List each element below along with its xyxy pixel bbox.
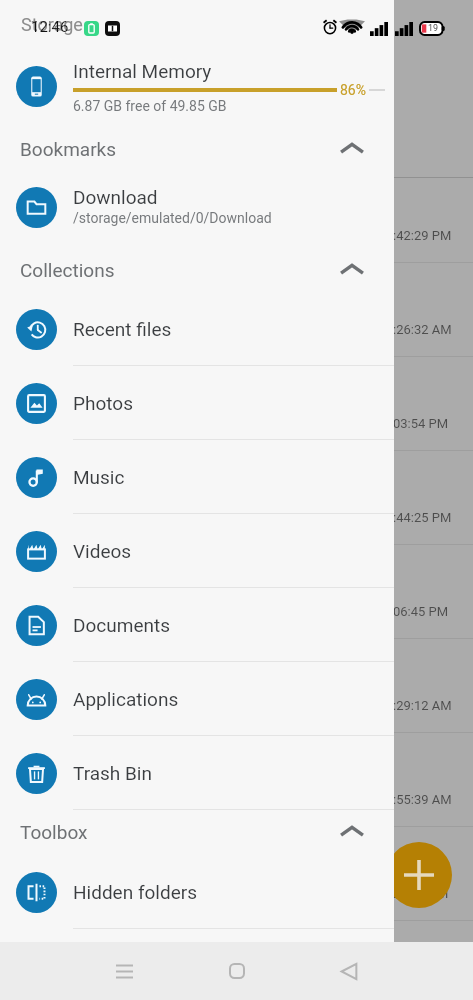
button[interactable]: Toolbox <box>0 814 394 849</box>
staticText: Documents <box>73 614 170 636</box>
staticText: Videos <box>73 540 132 562</box>
button[interactable]: Home <box>213 947 261 995</box>
staticText: :55:39 AM <box>393 792 452 807</box>
staticText: Hidden folders <box>73 881 197 903</box>
staticText: Recent files <box>73 318 172 340</box>
button[interactable]: Documents <box>0 588 394 662</box>
staticText: /storage/emulated/0/Download <box>73 210 272 226</box>
button[interactable]: Download <box>0 177 394 238</box>
staticText: :44:25 PM <box>393 510 452 525</box>
staticText: Bookmarks <box>20 138 117 160</box>
button[interactable]: Bookmarks <box>0 131 394 166</box>
staticText: 06:45 PM <box>393 604 449 619</box>
button[interactable]: Add <box>386 842 452 908</box>
staticText: Collections <box>20 259 115 281</box>
staticText: Applications <box>73 688 179 710</box>
staticText: 03:54 PM <box>393 416 449 431</box>
staticText: 19 <box>428 23 439 34</box>
button[interactable]: Trash Bin <box>0 736 394 810</box>
staticText: 20:08 AM <box>393 886 449 901</box>
button[interactable]: Recent files <box>0 292 394 366</box>
staticText: Toolbox <box>20 821 88 843</box>
button[interactable]: Videos <box>0 514 394 588</box>
staticText: :29:12 AM <box>393 698 452 713</box>
staticText: 6.87 GB free of 49.85 GB <box>73 98 227 114</box>
button[interactable]: Photos <box>0 366 394 440</box>
staticText: 12:46 <box>31 18 69 36</box>
staticText: :42:29 PM <box>393 228 452 243</box>
button[interactable]: Music <box>0 440 394 514</box>
staticText: 86% <box>340 82 366 98</box>
button[interactable]: Hidden folders <box>0 855 394 929</box>
staticText: Trash Bin <box>73 762 152 784</box>
staticText: Storage <box>21 14 83 35</box>
staticText: Download <box>73 186 158 208</box>
button[interactable]: Applications <box>0 662 394 736</box>
staticText: Internal Memory <box>73 60 212 82</box>
button[interactable]: Collections <box>0 252 394 287</box>
staticText: Photos <box>73 392 133 414</box>
staticText: Music <box>73 466 125 488</box>
button[interactable]: Recent apps <box>100 947 148 995</box>
button[interactable]: Back <box>325 947 373 995</box>
button[interactable]: Internal Memory <box>0 0 394 126</box>
staticText: :26:32 AM <box>393 322 452 337</box>
